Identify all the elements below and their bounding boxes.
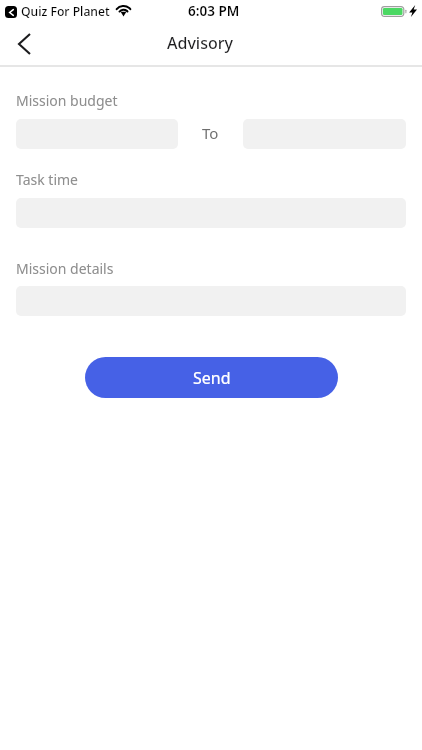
staticText: 6:03 PM (188, 2, 240, 20)
staticText: Quiz For Planet (21, 3, 110, 20)
staticText: Send (193, 367, 231, 389)
staticText: To (202, 123, 219, 143)
staticText: Task time (16, 170, 78, 189)
staticText: Mission budget (16, 91, 118, 110)
staticText: Mission details (16, 259, 114, 278)
button[interactable]: Back (6, 26, 42, 62)
staticText: Advisory (167, 32, 233, 54)
button[interactable]: Send (85, 357, 338, 398)
